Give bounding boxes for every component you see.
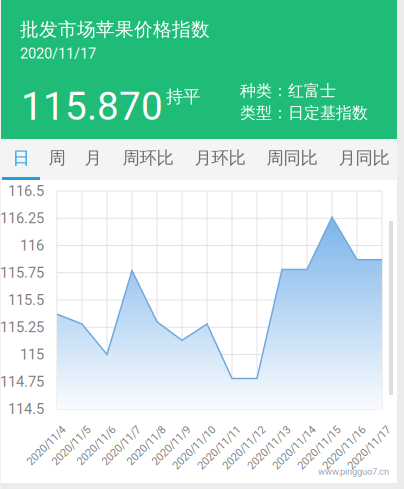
staticText: www.pingguo7.cn xyxy=(318,466,389,477)
staticText: 月 xyxy=(84,147,101,169)
staticText: 2020/11/15 xyxy=(283,422,339,434)
staticText: 115.870 xyxy=(21,84,163,129)
staticText: 2020/11/8 xyxy=(114,422,164,434)
staticText: 2020/11/6 xyxy=(64,422,114,434)
button[interactable]: 月环比 xyxy=(184,139,256,177)
staticText: 持平 xyxy=(166,86,200,107)
staticText: 2020/11/5 xyxy=(39,422,89,434)
staticText: 2020/11/4 xyxy=(14,422,64,434)
staticText: 115.75 xyxy=(0,264,44,281)
staticText: 2020/11/10 xyxy=(158,422,214,434)
staticText: 周 xyxy=(48,147,65,169)
staticText: 2020/11/12 xyxy=(208,422,264,434)
staticText: 2020/11/11 xyxy=(183,422,239,434)
button[interactable]: 周同比 xyxy=(256,139,328,177)
staticText: 116.25 xyxy=(0,210,44,227)
staticText: 2020/11/7 xyxy=(89,422,139,434)
button[interactable]: 周环比 xyxy=(112,139,184,177)
staticText: 日 xyxy=(12,147,29,169)
staticText: 116.5 xyxy=(8,182,44,200)
staticText: 114.5 xyxy=(8,400,44,418)
staticText: 类型：日定基指数 xyxy=(240,103,368,123)
button[interactable]: 周 xyxy=(40,139,74,177)
staticText: 周环比 xyxy=(122,147,173,169)
staticText: 2020/11/17 xyxy=(333,422,389,434)
staticText: 115.25 xyxy=(0,319,44,336)
staticText: 2020/11/14 xyxy=(258,422,314,434)
button[interactable]: 月同比 xyxy=(328,139,400,177)
staticText: 2020/11/17 xyxy=(20,45,96,62)
staticText: 2020/11/9 xyxy=(139,422,189,434)
staticText: 种类：红富士 xyxy=(240,81,336,101)
staticText: 月同比 xyxy=(338,147,389,169)
staticText: 115 xyxy=(20,346,44,363)
staticText: 周同比 xyxy=(266,147,317,169)
staticText: 116 xyxy=(20,237,44,254)
staticText: 2020/11/16 xyxy=(308,422,364,434)
button[interactable]: 日 xyxy=(2,139,40,177)
staticText: 批发市场苹果价格指数 xyxy=(20,18,210,41)
staticText: 月环比 xyxy=(194,147,245,169)
staticText: 2020/11/13 xyxy=(233,422,289,434)
button[interactable]: 月 xyxy=(74,139,112,177)
staticText: 114.75 xyxy=(0,373,44,390)
staticText: 115.5 xyxy=(8,291,44,309)
